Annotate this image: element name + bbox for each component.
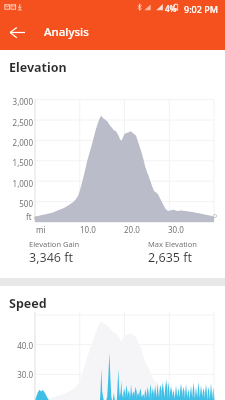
- button[interactable]: Back: [0, 16, 34, 50]
- staticText: 40.0: [0, 340, 33, 351]
- staticText: 1,500: [0, 157, 33, 168]
- staticText: 3,000: [0, 96, 33, 107]
- staticText: Analysis: [44, 24, 89, 40]
- staticText: 1,000: [0, 178, 33, 189]
- staticText: mi: [36, 224, 46, 235]
- staticText: Elevation: [9, 59, 67, 76]
- staticText: 9:02 PM: [184, 3, 218, 15]
- staticText: Max Elevation: [148, 239, 197, 249]
- staticText: ft: [26, 211, 32, 222]
- staticText: 2,635 ft: [148, 249, 193, 266]
- staticText: 20.0: [124, 224, 140, 235]
- staticText: 4%: [165, 3, 177, 14]
- staticText: 2,500: [0, 117, 33, 128]
- staticText: Speed: [9, 295, 47, 312]
- staticText: 30.0: [0, 369, 33, 380]
- staticText: 500: [0, 198, 33, 209]
- staticText: 30.0: [168, 224, 184, 235]
- staticText: 10.0: [80, 224, 96, 235]
- staticText: Elevation Gain: [29, 239, 80, 249]
- staticText: 3,346 ft: [29, 249, 74, 266]
- staticText: 2,000: [0, 137, 33, 148]
